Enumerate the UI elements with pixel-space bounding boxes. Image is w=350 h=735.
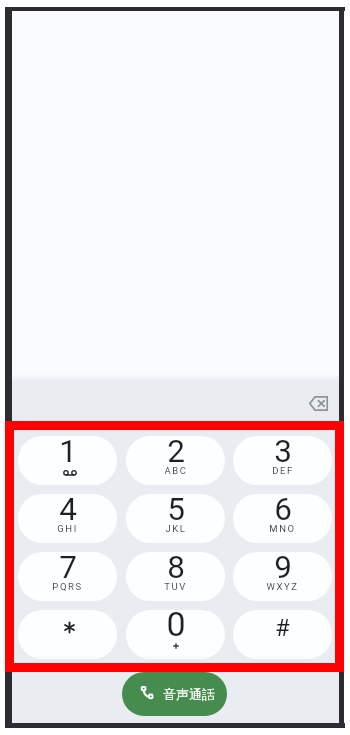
- button[interactable]: 8: [126, 552, 225, 601]
- button[interactable]: 0: [126, 610, 225, 659]
- staticText: 4: [59, 494, 77, 528]
- staticText: 9: [274, 552, 292, 586]
- button[interactable]: #: [233, 610, 332, 659]
- staticText: JKL: [165, 523, 187, 534]
- button[interactable]: 4: [18, 494, 117, 543]
- staticText: PQRS: [52, 581, 83, 592]
- staticText: ABC: [164, 465, 188, 476]
- button[interactable]: 音声通話: [122, 672, 227, 716]
- staticText: 5: [167, 494, 185, 528]
- staticText: 音声通話: [163, 686, 215, 702]
- staticText: DEF: [272, 465, 294, 476]
- button[interactable]: 3: [233, 436, 332, 485]
- staticText: 0: [166, 610, 186, 644]
- staticText: 8: [167, 552, 185, 586]
- button[interactable]: [303, 389, 335, 417]
- staticText: 3: [274, 436, 292, 470]
- staticText: TUV: [164, 581, 187, 592]
- staticText: 7: [59, 552, 77, 586]
- button[interactable]: [18, 610, 117, 659]
- button[interactable]: 9: [233, 552, 332, 601]
- button[interactable]: 5: [126, 494, 225, 543]
- staticText: 6: [274, 494, 292, 528]
- staticText: 2: [167, 436, 185, 470]
- button[interactable]: 1: [18, 436, 117, 485]
- staticText: MNO: [269, 523, 296, 534]
- button[interactable]: 2: [126, 436, 225, 485]
- staticText: 1: [59, 436, 77, 470]
- staticText: WXYZ: [266, 581, 299, 592]
- button[interactable]: 6: [233, 494, 332, 543]
- staticText: #: [275, 614, 290, 642]
- staticText: GHI: [57, 523, 78, 534]
- button[interactable]: 7: [18, 552, 117, 601]
